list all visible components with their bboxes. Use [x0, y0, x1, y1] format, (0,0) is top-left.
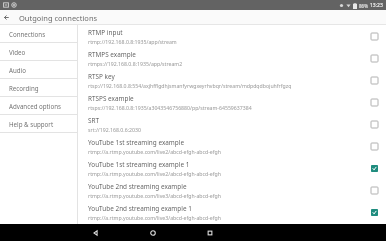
button[interactable]: Disabled	[367, 139, 381, 153]
staticText: Video	[9, 48, 26, 56]
staticText: RTMPS example	[88, 50, 136, 59]
staticText: SRT	[88, 116, 100, 125]
button[interactable]: RTSPS example	[78, 91, 386, 113]
button[interactable]: Disabled	[367, 117, 381, 131]
button[interactable]: RTMP input	[78, 25, 386, 47]
staticText: rtmp://a.rtmp.youtube.com/live2/abcd-efg…	[88, 148, 221, 155]
staticText: Outgoing connections	[19, 13, 98, 23]
button[interactable]: Audio	[0, 61, 77, 79]
staticText: YouTube 1st streaming example 1	[88, 160, 190, 169]
staticText: rtsps://192.168.0.8:1935/a3043546756880/…	[88, 104, 252, 111]
staticText: rtmp://192.168.0.8:1935/app/stream	[88, 38, 177, 45]
staticText: 13:23	[370, 2, 383, 9]
staticText: RTSP key	[88, 72, 115, 81]
staticText: RTMP input	[88, 28, 123, 37]
button[interactable]: YouTube 1st streaming example 1	[78, 157, 386, 179]
button[interactable]: Disabled	[367, 73, 381, 87]
staticText: rtsp://192.168.0.8:554/axjhfflgdhjsmanfy…	[88, 82, 292, 89]
staticText: 86%	[359, 3, 368, 9]
button[interactable]: Enabled	[367, 161, 381, 175]
button[interactable]: Recent apps	[202, 225, 217, 240]
staticText: rtmps://192.168.0.8:1935/app/stream2	[88, 60, 183, 67]
staticText: YouTube 2nd streaming example	[88, 182, 187, 191]
button[interactable]: Disabled	[367, 183, 381, 197]
button[interactable]: Disabled	[367, 51, 381, 65]
button[interactable]: Advanced options	[0, 97, 77, 115]
button[interactable]: Disabled	[367, 29, 381, 43]
button[interactable]: RTMPS example	[78, 47, 386, 69]
staticText: srt://192.168.0.6:2030	[88, 126, 141, 133]
button[interactable]: Back	[0, 10, 15, 25]
staticText: Audio	[9, 66, 26, 74]
button[interactable]: YouTube 2nd streaming example	[78, 179, 386, 201]
button[interactable]: Connections	[0, 25, 77, 43]
button[interactable]: Disabled	[367, 95, 381, 109]
button[interactable]: YouTube 2nd streaming example 1	[78, 201, 386, 223]
staticText: Connections	[9, 30, 46, 38]
button[interactable]: Help & support	[0, 115, 77, 133]
button[interactable]: RTSP key	[78, 69, 386, 91]
button[interactable]: Recording	[0, 79, 77, 97]
button[interactable]: Home	[145, 225, 160, 240]
button[interactable]: Enabled	[367, 205, 381, 219]
button[interactable]: SRT	[78, 113, 386, 135]
staticText: RTSPS example	[88, 94, 134, 103]
button[interactable]: Video	[0, 43, 77, 61]
staticText: rtmp://a.rtmp.youtube.com/live2/abcd-efg…	[88, 170, 221, 177]
staticText: YouTube 2nd streaming example 1	[88, 204, 192, 213]
button[interactable]: Back	[88, 225, 103, 240]
staticText: rtmp://a.rtmp.youtube.com/live3/abcd-efg…	[88, 192, 221, 199]
staticText: Recording	[9, 84, 39, 92]
staticText: YouTube 1st streaming example	[88, 138, 185, 147]
staticText: rtmp://a.rtmp.youtube.com/live3/abcd-efg…	[88, 214, 221, 221]
button[interactable]: YouTube 1st streaming example	[78, 135, 386, 157]
staticText: Help & support	[9, 120, 54, 128]
staticText: Advanced options	[9, 102, 61, 110]
